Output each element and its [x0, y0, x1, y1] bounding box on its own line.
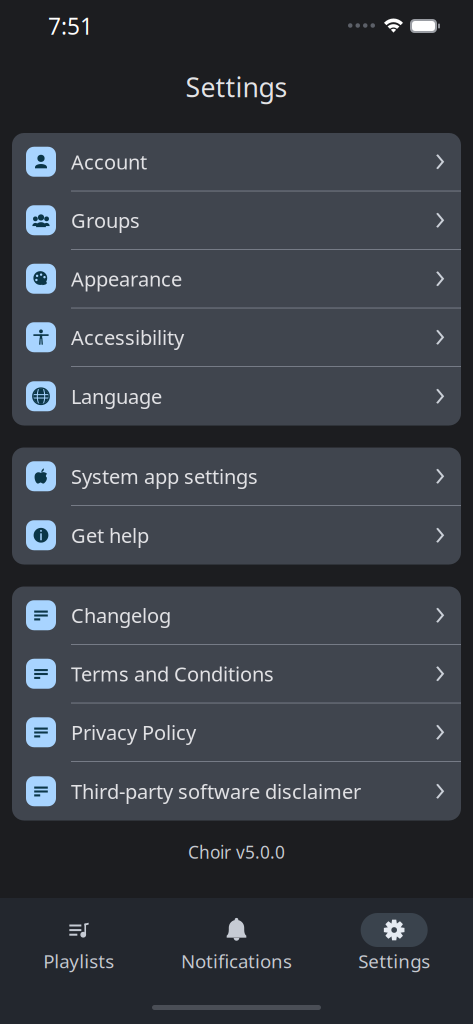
button[interactable]: Appearance: [12, 250, 461, 308]
button[interactable]: Get help: [12, 506, 461, 564]
staticText: 7:51: [48, 11, 93, 41]
button[interactable]: System app settings: [12, 447, 461, 506]
button[interactable]: Account: [12, 133, 461, 191]
button[interactable]: Notifications: [158, 900, 315, 980]
button[interactable]: Settings: [315, 900, 473, 980]
staticText: Appearance: [71, 265, 182, 292]
staticText: Settings: [185, 69, 287, 105]
button[interactable]: Terms and Conditions: [12, 645, 461, 703]
staticText: Accessibility: [71, 324, 184, 351]
staticText: System app settings: [71, 463, 258, 490]
staticText: Privacy Policy: [71, 719, 196, 746]
button[interactable]: Language: [12, 367, 461, 425]
staticText: Settings: [358, 949, 430, 973]
staticText: Third-party software disclaimer: [71, 778, 361, 805]
button[interactable]: Playlists: [0, 900, 158, 980]
button[interactable]: Groups: [12, 191, 461, 250]
staticText: Playlists: [43, 949, 114, 973]
staticText: Changelog: [71, 602, 171, 629]
staticText: Get help: [71, 522, 149, 549]
button[interactable]: Accessibility: [12, 308, 461, 367]
staticText: Choir v5.0.0: [188, 840, 285, 863]
staticText: Notifications: [181, 949, 292, 973]
staticText: Language: [71, 383, 162, 410]
staticText: Account: [71, 148, 147, 175]
button[interactable]: Changelog: [12, 586, 461, 645]
staticText: Groups: [71, 207, 140, 234]
button[interactable]: Third-party software disclaimer: [12, 762, 461, 820]
staticText: Terms and Conditions: [71, 660, 274, 687]
button[interactable]: Privacy Policy: [12, 703, 461, 762]
